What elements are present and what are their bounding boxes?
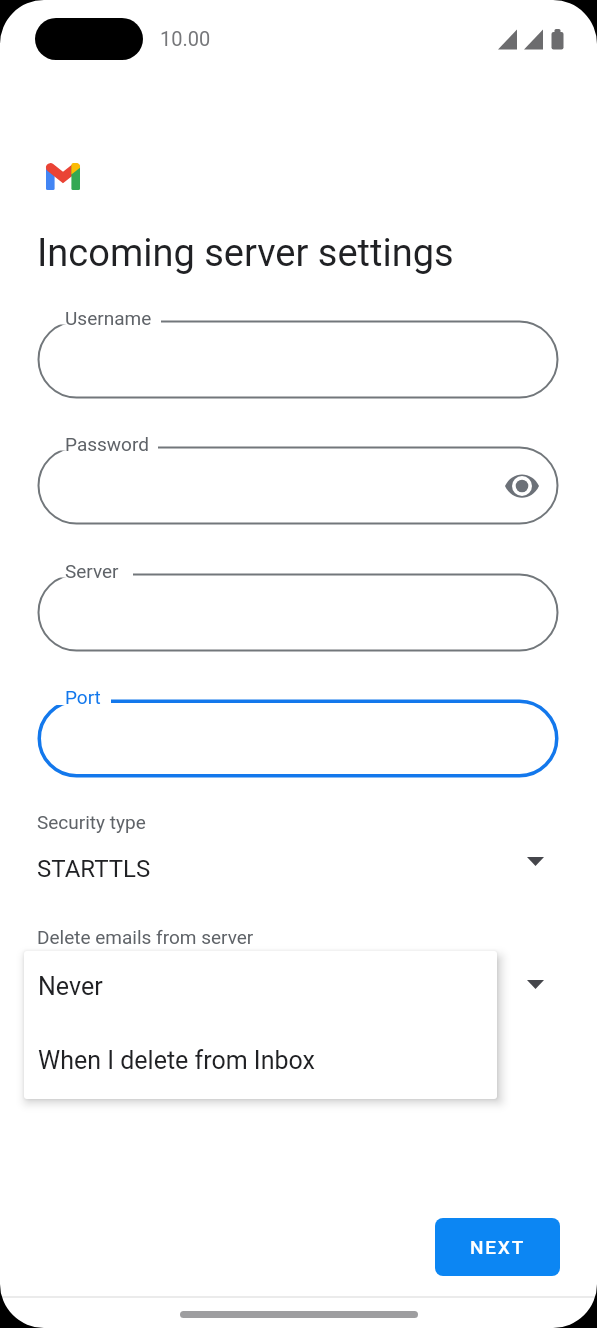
button[interactable] — [37, 446, 559, 525]
button[interactable] — [37, 573, 559, 652]
button[interactable] — [37, 699, 559, 778]
staticText: Password — [65, 433, 149, 455]
staticText: Never — [38, 972, 103, 1001]
staticText: When I delete from Inbox — [38, 1046, 315, 1075]
button[interactable]: Never — [24, 951, 497, 1025]
staticText: Port — [65, 686, 101, 708]
staticText: Username — [65, 307, 152, 329]
staticText: Server — [65, 560, 119, 582]
button[interactable] — [24, 805, 573, 890]
button[interactable] — [37, 320, 559, 399]
staticText: 10.00 — [160, 27, 211, 50]
staticText: STARTTLS — [37, 855, 151, 883]
staticText: Incoming server settings — [37, 231, 454, 276]
staticText: Security type — [37, 811, 146, 833]
staticText: NEXT — [470, 1236, 526, 1258]
staticText: Delete emails from server — [37, 926, 254, 948]
button[interactable]: When I delete from Inbox — [24, 1025, 497, 1099]
button[interactable]: NEXT — [435, 1218, 560, 1276]
